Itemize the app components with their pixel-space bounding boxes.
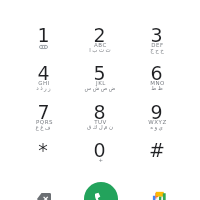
staticText: ي و ه xyxy=(150,123,163,130)
staticText: ف غ ع xyxy=(35,123,51,130)
staticText: 5 xyxy=(93,62,106,84)
staticText: 7 xyxy=(37,101,50,123)
button[interactable]: 4 xyxy=(15,66,71,105)
staticText: ض ص ش س xyxy=(84,84,116,91)
staticText: * xyxy=(38,139,48,161)
staticText: ث ت ب ا xyxy=(89,46,111,53)
button[interactable]: 5 xyxy=(71,66,128,105)
staticText: ABC xyxy=(94,42,107,48)
button[interactable]: 6 xyxy=(128,66,185,105)
staticText: TUV xyxy=(94,119,107,125)
button[interactable]: 7 xyxy=(15,105,71,143)
staticText: 1 xyxy=(37,24,50,46)
button[interactable]: Backspace xyxy=(30,185,58,200)
staticText: # xyxy=(149,139,165,161)
staticText: خ ح ج xyxy=(150,46,164,53)
button[interactable]: 0 xyxy=(71,143,128,181)
staticText: 9 xyxy=(150,101,163,123)
button[interactable]: 3 xyxy=(128,28,185,66)
staticText: PQRS xyxy=(36,119,53,125)
staticText: DEF xyxy=(151,42,164,48)
staticText: ن م ل ك ق xyxy=(87,123,113,130)
staticText: ز ر ذ د xyxy=(36,84,51,91)
staticText: JKL xyxy=(96,80,106,86)
staticText: 3 xyxy=(150,24,163,46)
staticText: WXYZ xyxy=(148,119,167,125)
staticText: ظ ط xyxy=(151,84,163,91)
staticText: 2 xyxy=(93,24,106,46)
staticText: + xyxy=(98,157,104,163)
button[interactable]: Contacts xyxy=(144,184,172,200)
staticText: 6 xyxy=(150,62,163,84)
button[interactable]: # xyxy=(128,143,185,181)
button[interactable]: 1 xyxy=(15,28,71,66)
staticText: 0 xyxy=(93,139,106,161)
staticText: 8 xyxy=(93,101,106,123)
button[interactable]: * xyxy=(15,143,71,181)
button[interactable]: 8 xyxy=(71,105,128,143)
staticText: MNO xyxy=(150,80,165,86)
button[interactable]: 9 xyxy=(128,105,185,143)
button[interactable]: Call xyxy=(84,182,118,200)
staticText: GHI xyxy=(38,80,50,86)
button[interactable]: 2 xyxy=(71,28,128,66)
staticText: 4 xyxy=(37,62,50,84)
